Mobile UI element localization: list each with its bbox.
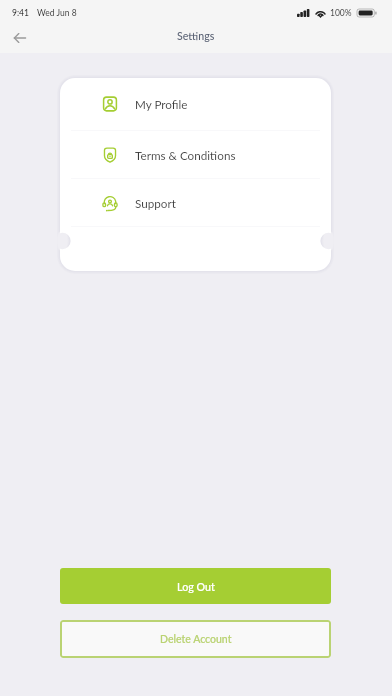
button[interactable]: My Profile bbox=[60, 78, 331, 130]
button[interactable]: Back bbox=[8, 26, 32, 50]
button[interactable]: Log Out bbox=[60, 568, 331, 604]
staticText: Log Out bbox=[177, 580, 215, 593]
staticText: 100% bbox=[330, 8, 352, 18]
staticText: Settings bbox=[177, 30, 215, 43]
staticText: Wed Jun 8 bbox=[37, 8, 77, 18]
button[interactable]: Terms & Conditions bbox=[60, 131, 331, 178]
button[interactable]: Delete Account bbox=[60, 620, 331, 658]
staticText: Delete Account bbox=[160, 633, 232, 646]
staticText: Terms & Conditions bbox=[135, 148, 236, 162]
staticText: My Profile bbox=[135, 97, 188, 111]
button[interactable]: Support bbox=[60, 179, 331, 226]
staticText: Support bbox=[135, 196, 176, 210]
staticText: 9:41 bbox=[12, 8, 29, 18]
